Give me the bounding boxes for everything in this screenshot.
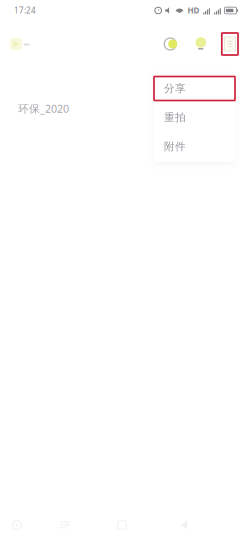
button[interactable]: App logo xyxy=(0,32,34,56)
button[interactable]: 分享 xyxy=(154,74,235,103)
button[interactable]: More options xyxy=(222,33,238,55)
staticText: 分享 xyxy=(164,82,186,95)
button[interactable]: Night mode xyxy=(155,32,186,56)
staticText: 17:24 xyxy=(14,5,36,16)
staticText: HD xyxy=(187,5,199,16)
button[interactable]: Brightness xyxy=(186,32,216,56)
staticText: 环保_2020 xyxy=(18,101,69,116)
button[interactable]: 重拍 xyxy=(154,103,235,132)
staticText: 重拍 xyxy=(164,111,186,124)
staticText: 附件 xyxy=(164,140,186,153)
button[interactable]: 附件 xyxy=(154,132,235,161)
